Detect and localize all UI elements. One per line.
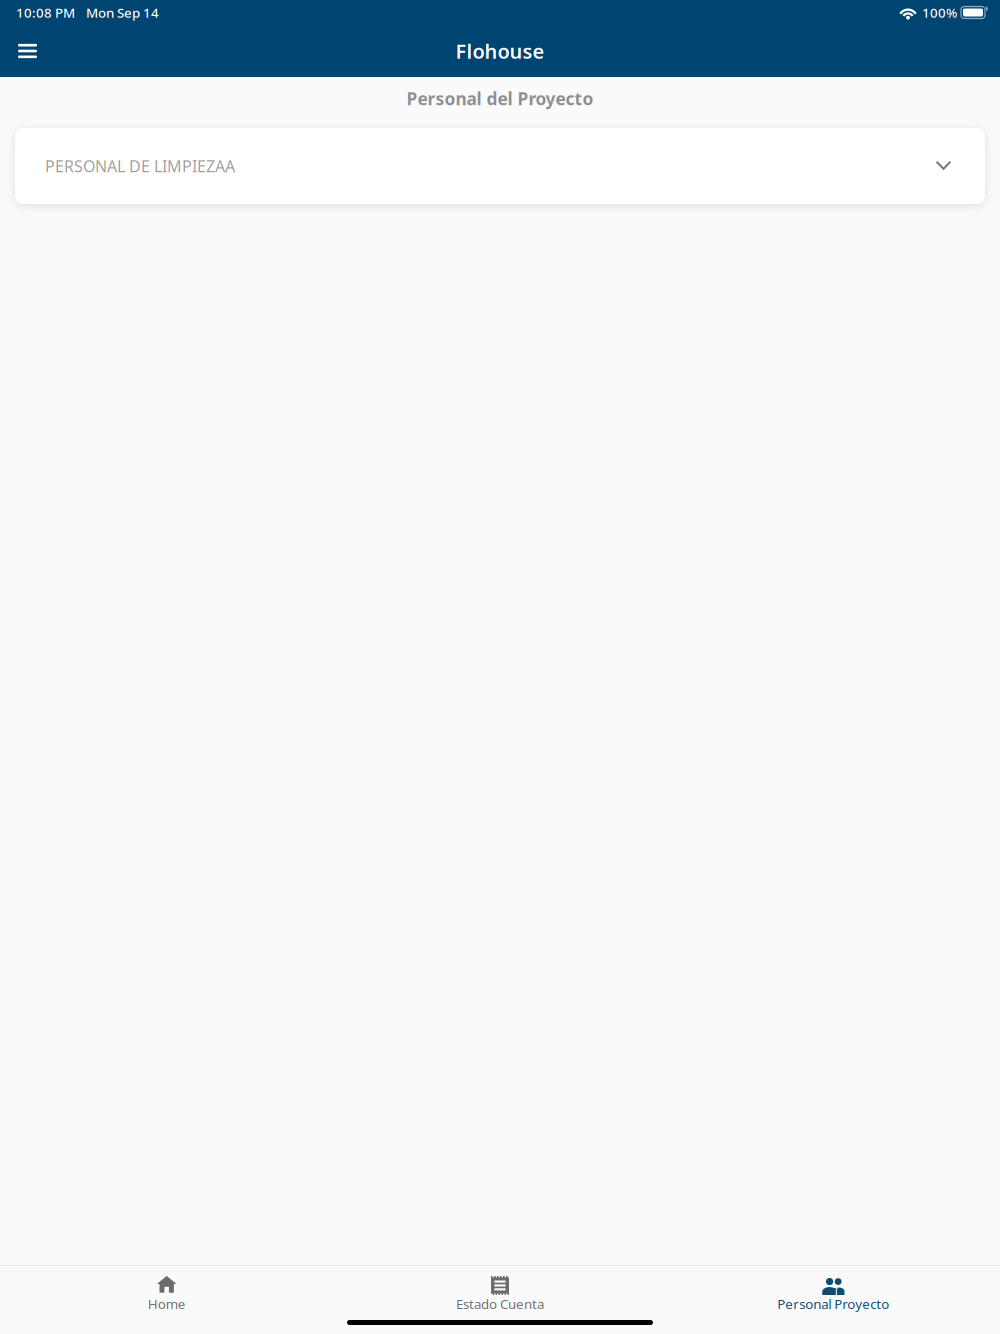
staticText: Flohouse: [455, 38, 544, 64]
button[interactable]: PERSONAL DE LIMPIEZAA: [15, 128, 985, 204]
staticText: Estado Cuenta: [456, 1295, 544, 1313]
staticText: Personal Proyecto: [777, 1295, 889, 1313]
staticText: Home: [148, 1295, 186, 1313]
staticText: 10:08 PM: [16, 4, 75, 21]
staticText: Personal del Proyecto: [406, 87, 593, 110]
button[interactable]: Personal Proyecto: [667, 1266, 1000, 1321]
button[interactable]: Home: [0, 1266, 333, 1321]
staticText: Mon Sep 14: [86, 4, 159, 21]
staticText: 100%: [922, 4, 957, 21]
button[interactable]: Menu: [0, 32, 53, 70]
button[interactable]: Estado Cuenta: [333, 1266, 667, 1321]
staticText: PERSONAL DE LIMPIEZAA: [45, 155, 235, 177]
